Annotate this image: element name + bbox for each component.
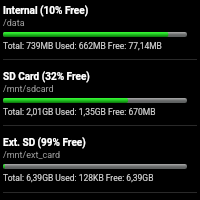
staticText: Total: 739MB Used: 662MB Free: 77,14MB [3, 41, 162, 51]
staticText: /mnt/ext_card [3, 150, 61, 161]
button[interactable]: SD Card (32% Free) [0, 71, 200, 128]
staticText: SD Card (32% Free) [3, 71, 90, 83]
staticText: Internal (10% Free) [3, 5, 89, 17]
staticText: /mnt/sdcard [3, 84, 54, 95]
staticText: /data [3, 18, 25, 29]
staticText: Total: 6,39GB Used: 128KB Free: 6,39GB [3, 173, 154, 183]
button[interactable]: Internal (10% Free) [0, 5, 200, 62]
staticText: Total: 2,01GB Used: 1,35GB Free: 670MB [3, 107, 156, 117]
staticText: Ext. SD (99% Free) [3, 137, 86, 149]
button[interactable]: Ext. SD (99% Free) [0, 137, 200, 194]
